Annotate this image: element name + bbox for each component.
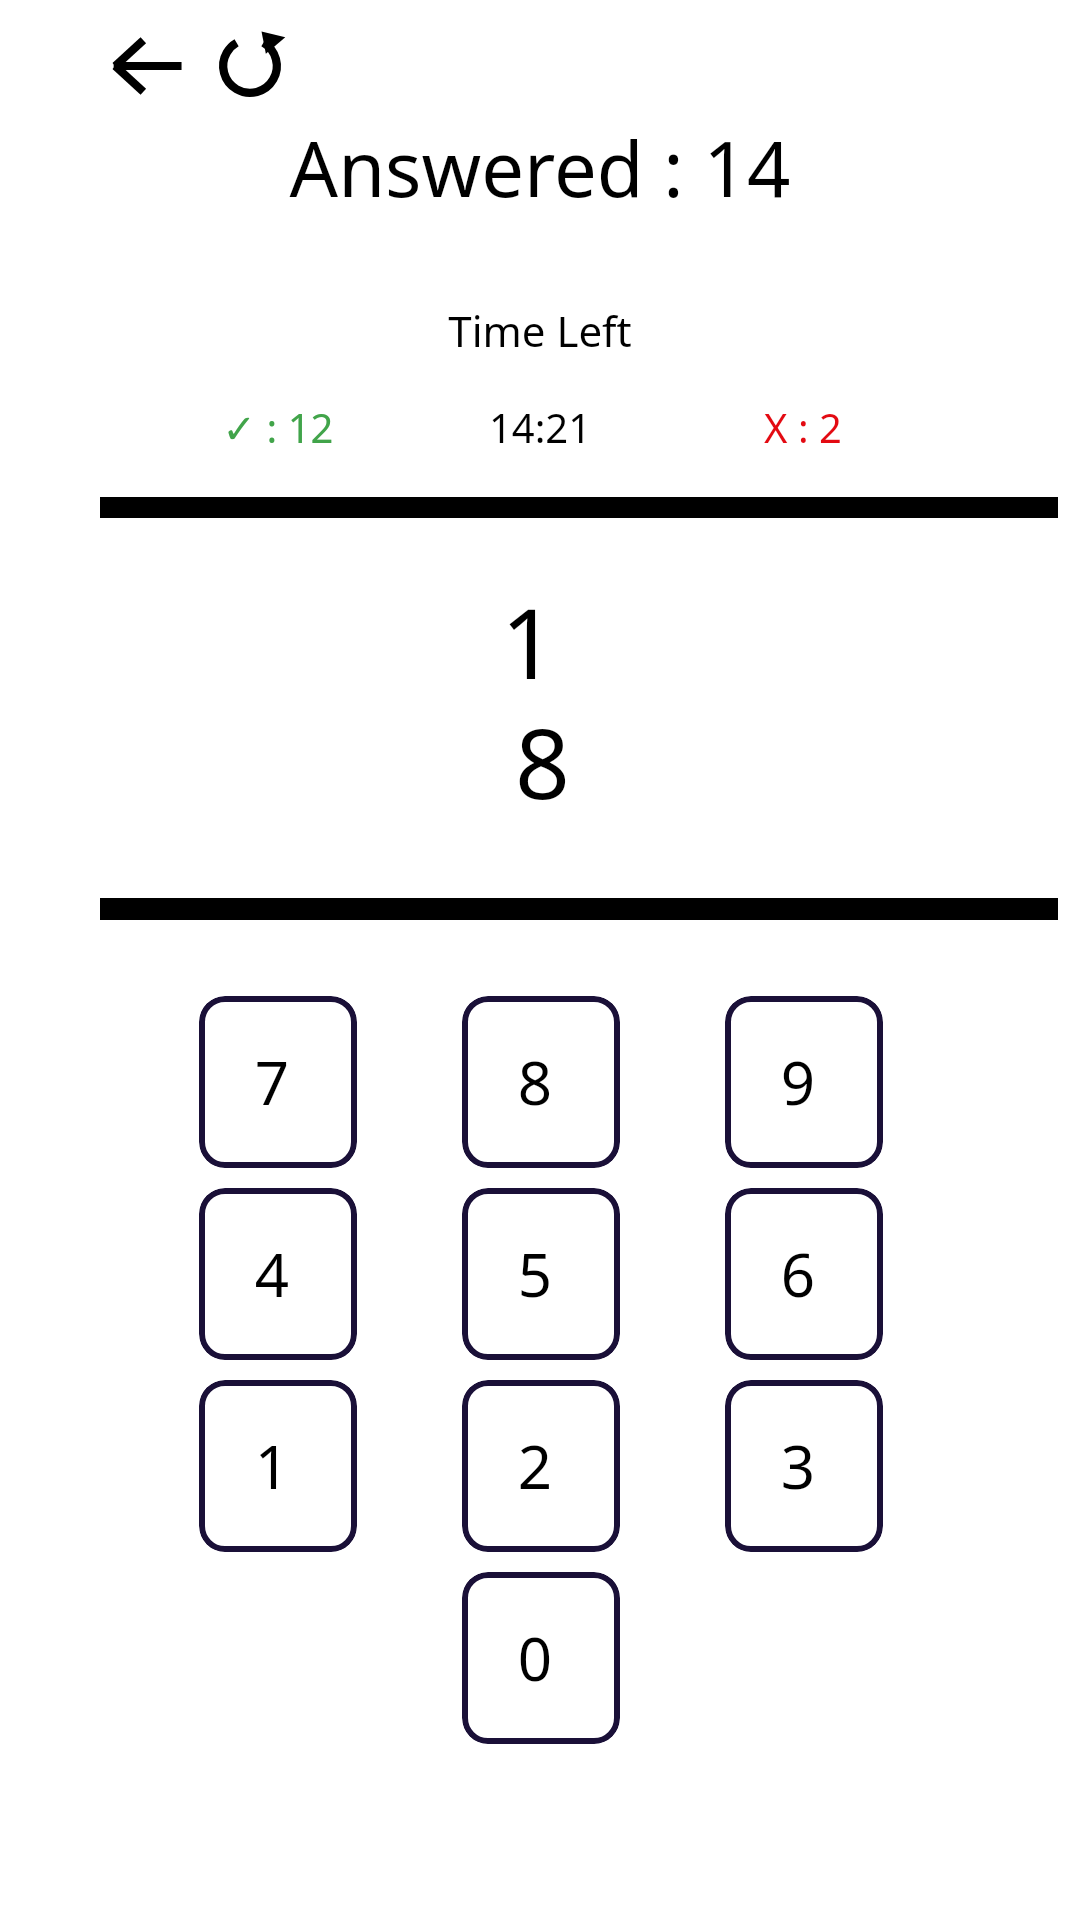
button[interactable]: Restart	[202, 18, 298, 114]
button[interactable]: 6	[725, 1188, 883, 1360]
staticText: 7	[232, 1041, 312, 1123]
staticText: 4	[232, 1233, 312, 1315]
staticText: 1	[0, 576, 556, 707]
staticText: X : 2	[693, 400, 913, 454]
button[interactable]: 8	[462, 996, 620, 1168]
staticText: 8	[0, 696, 570, 827]
staticText: 0	[495, 1617, 575, 1699]
staticText: 2	[495, 1425, 575, 1507]
staticText: 9	[758, 1041, 838, 1123]
staticText: Time Left	[0, 302, 1080, 359]
button[interactable]: Back	[100, 18, 196, 114]
staticText: 8	[495, 1041, 575, 1123]
staticText: 5	[495, 1233, 575, 1315]
staticText: 1	[232, 1425, 312, 1507]
staticText: 6	[758, 1233, 838, 1315]
button[interactable]: 3	[725, 1380, 883, 1552]
button[interactable]: 9	[725, 996, 883, 1168]
button[interactable]: 2	[462, 1380, 620, 1552]
staticText: Answered : 14	[0, 116, 1080, 220]
button[interactable]: 5	[462, 1188, 620, 1360]
button[interactable]: 1	[199, 1380, 357, 1552]
staticText: 14:21	[430, 400, 650, 454]
button[interactable]: 7	[199, 996, 357, 1168]
button[interactable]: 0	[462, 1572, 620, 1744]
button[interactable]: 4	[199, 1188, 357, 1360]
staticText: 3	[758, 1425, 838, 1507]
staticText: ✓ : 12	[168, 400, 388, 454]
